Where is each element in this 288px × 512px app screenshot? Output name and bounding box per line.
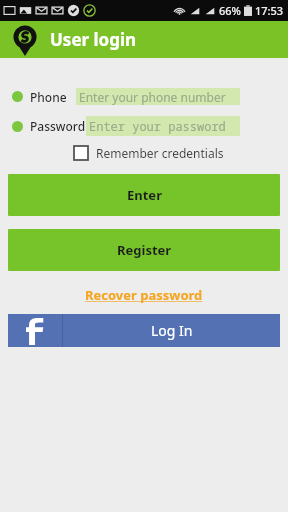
button[interactable]: Log In bbox=[8, 314, 280, 347]
other: App logo bbox=[13, 25, 37, 56]
button[interactable]: Register bbox=[8, 229, 280, 271]
staticText: Register bbox=[117, 241, 172, 259]
button[interactable]: Enter your password bbox=[86, 116, 240, 136]
staticText: Enter bbox=[127, 186, 162, 204]
staticText: 66% bbox=[219, 3, 241, 18]
staticText: Remember credentials bbox=[96, 145, 224, 161]
staticText: User login bbox=[50, 28, 137, 51]
staticText: 17:53 bbox=[255, 3, 284, 18]
button[interactable]: Remember credentials bbox=[74, 145, 276, 161]
button[interactable]: Enter your phone number bbox=[76, 88, 240, 105]
button[interactable]: Enter bbox=[8, 174, 280, 216]
staticText: Password bbox=[30, 118, 86, 134]
staticText: Log In bbox=[151, 321, 193, 340]
staticText: Phone bbox=[30, 89, 67, 105]
button[interactable]: Recover password bbox=[79, 284, 209, 306]
staticText: Enter your phone number bbox=[79, 89, 226, 105]
staticText: Enter your password bbox=[89, 118, 226, 134]
